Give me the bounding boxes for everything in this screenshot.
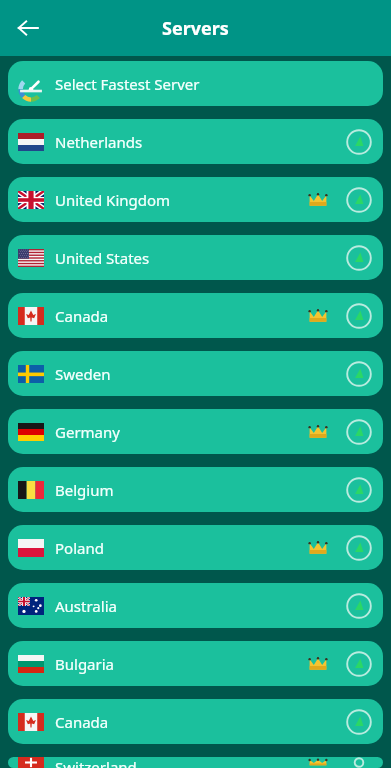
button[interactable]: Canada [8,293,383,338]
button[interactable]: Select Sweden [345,360,373,388]
button[interactable]: Belgium [8,467,383,512]
button[interactable]: Poland [8,525,383,570]
staticText: United Kingdom [55,190,171,210]
button[interactable]: Select Germany [345,418,373,446]
staticText: Poland [55,538,104,558]
button[interactable]: Select United States [345,244,373,272]
button[interactable]: Select Canada [345,302,373,330]
staticText: Servers [0,16,391,41]
button[interactable]: Select Fastest Server [8,61,383,106]
button[interactable]: United Kingdom [8,177,383,222]
staticText: United States [55,248,150,268]
button[interactable]: Select Bulgaria [345,650,373,678]
staticText: Select Fastest Server [55,74,200,94]
staticText: Australia [55,596,117,616]
staticText: Canada [55,306,109,326]
staticText: Belgium [55,480,114,500]
button[interactable]: Australia [8,583,383,628]
staticText: Germany [55,422,120,442]
button[interactable]: Canada [8,699,383,744]
staticText: Bulgaria [55,654,115,674]
button[interactable]: Switzerland [8,757,383,768]
button[interactable]: Select Canada [345,708,373,736]
button[interactable]: United States [8,235,383,280]
staticText: Netherlands [55,132,143,152]
button[interactable]: Sweden [8,351,383,396]
button[interactable]: Select United Kingdom [345,186,373,214]
staticText: Sweden [55,364,111,384]
button[interactable]: Select Belgium [345,476,373,504]
button[interactable]: Select Netherlands [345,128,373,156]
button[interactable]: Select Australia [345,592,373,620]
button[interactable]: Back [8,8,48,48]
button[interactable]: Germany [8,409,383,454]
button[interactable]: Select Poland [345,534,373,562]
button[interactable]: Netherlands [8,119,383,164]
button[interactable]: Bulgaria [8,641,383,686]
staticText: Switzerland [55,757,137,768]
staticText: Canada [55,712,109,732]
button[interactable]: Select Switzerland [345,757,373,768]
